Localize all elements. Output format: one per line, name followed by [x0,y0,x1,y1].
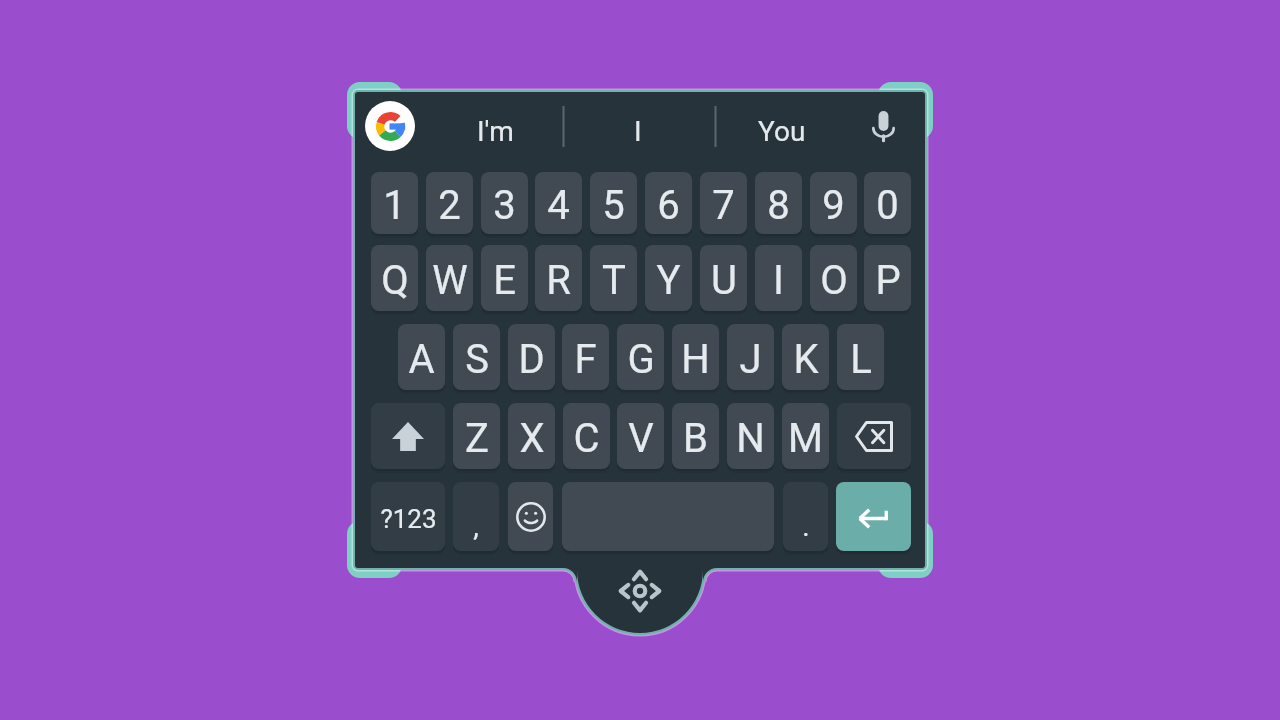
button[interactable]: I'm [440,92,550,171]
button[interactable]: I [580,92,696,171]
button[interactable]: E [481,245,528,311]
button[interactable]: 4 [535,172,582,234]
button[interactable]: . [783,482,828,551]
staticText: 6 [657,182,680,229]
staticText: E [493,257,516,304]
button[interactable]: Google search [365,101,415,151]
button[interactable]: Emoji [508,482,553,551]
staticText: 8 [767,182,790,229]
button[interactable]: C [563,403,610,469]
staticText: L [850,336,872,383]
button[interactable]: F [562,324,609,390]
button[interactable]: 0 [864,172,911,234]
staticText: Z [465,415,489,462]
staticText: C [573,415,600,462]
button[interactable]: 6 [645,172,692,234]
button[interactable]: ?123 [371,482,445,551]
staticText: R [546,257,571,304]
staticText: K [793,336,819,383]
button[interactable]: S [453,324,500,390]
staticText: 0 [876,182,899,229]
button[interactable]: G [617,324,664,390]
button[interactable]: O [810,245,857,311]
staticText: I'm [477,115,514,148]
staticText: 2 [438,182,461,229]
button[interactable]: I [755,245,802,311]
staticText: I [773,257,784,304]
button[interactable]: Voice input [861,104,905,148]
staticText: A [408,336,435,383]
staticText: W [432,257,468,304]
staticText: N [736,415,765,462]
staticText: V [628,415,654,462]
staticText: G [627,336,655,383]
staticText: Y [656,257,681,304]
button[interactable]: , [453,482,499,551]
staticText: You [758,115,806,148]
button[interactable]: J [727,324,774,390]
button[interactable]: X [508,403,555,469]
staticText: M [788,415,823,462]
button[interactable]: V [617,403,664,469]
staticText: 5 [602,182,625,229]
staticText: P [875,257,901,304]
staticText: 3 [493,182,516,229]
button[interactable]: Move keyboard [577,562,703,631]
button[interactable]: Backspace [837,403,911,469]
staticText: U [711,257,737,304]
button[interactable]: You [724,92,840,171]
button[interactable]: M [782,403,829,469]
staticText: F [574,336,597,383]
staticText: S [465,336,489,383]
button[interactable]: Enter [836,482,911,551]
staticText: Q [381,257,409,304]
button[interactable]: U [700,245,747,311]
button[interactable]: Y [645,245,692,311]
staticText: ?123 [380,504,437,534]
button[interactable]: Z [453,403,500,469]
staticText: . [802,510,810,543]
staticText: , [473,510,479,543]
staticText: 1 [383,182,406,229]
staticText: O [820,257,848,304]
button[interactable]: T [590,245,637,311]
button[interactable]: Shift [371,403,445,469]
button[interactable]: K [782,324,829,390]
staticText: B [683,415,708,462]
button[interactable]: P [864,245,911,311]
staticText: I [634,115,642,148]
button[interactable]: B [672,403,719,469]
button[interactable]: L [837,324,884,390]
staticText: T [602,257,626,304]
button[interactable]: A [398,324,445,390]
button[interactable]: 2 [426,172,473,234]
button[interactable]: D [508,324,555,390]
staticText: H [681,336,710,383]
button[interactable]: 9 [810,172,857,234]
staticText: J [739,336,762,383]
button[interactable]: Q [371,245,418,311]
button[interactable]: 5 [590,172,637,234]
button[interactable]: W [426,245,473,311]
button[interactable]: N [727,403,774,469]
button[interactable]: H [672,324,719,390]
button[interactable]: 3 [481,172,528,234]
staticText: 7 [712,182,735,229]
button[interactable]: R [535,245,582,311]
staticText: 4 [547,182,570,229]
button[interactable]: 8 [755,172,802,234]
staticText: D [518,336,545,383]
staticText: 9 [822,182,845,229]
staticText: X [519,415,545,462]
button[interactable]: 1 [371,172,418,234]
button[interactable]: 7 [700,172,747,234]
